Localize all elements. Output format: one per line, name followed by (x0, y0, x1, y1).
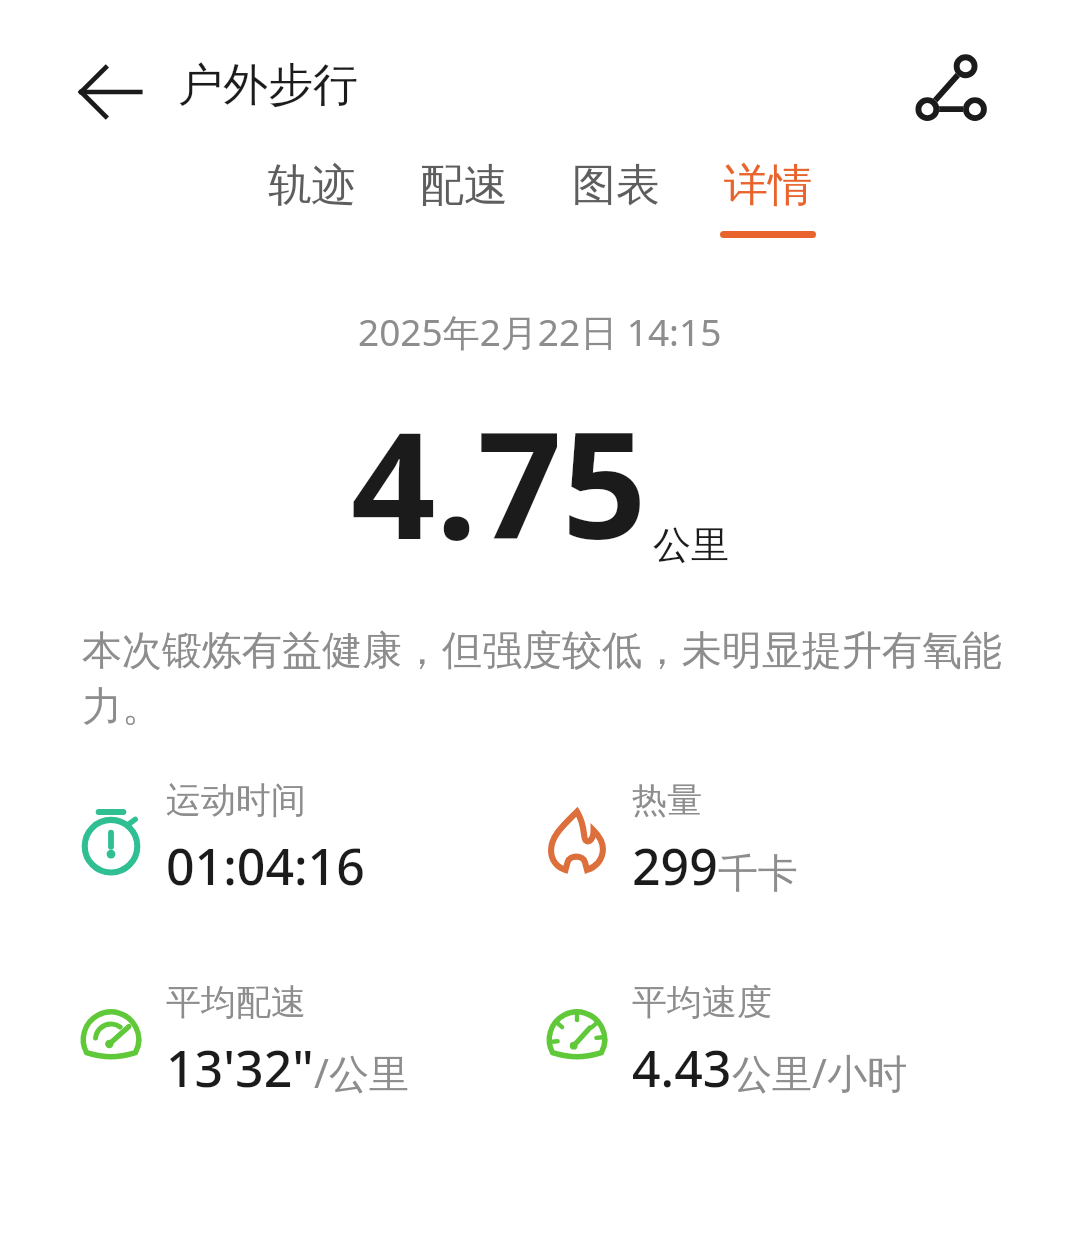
button[interactable]: 运动时间 (0, 778, 520, 900)
staticText: 01:04:16 (166, 832, 365, 900)
staticText: 图表 (572, 158, 660, 213)
staticText: 公里 (653, 521, 729, 569)
staticText: 运动时间 (166, 778, 306, 822)
staticText: /公里 (314, 1045, 409, 1100)
button[interactable]: 图表 (546, 148, 686, 248)
staticText: 2025年2月22日 14:15 (358, 306, 722, 357)
staticText: 平均配速 (166, 980, 306, 1024)
staticText: 4.75 (351, 381, 647, 583)
button[interactable]: 配速 (394, 148, 534, 248)
staticText: 千卡 (718, 848, 798, 898)
button[interactable]: 热量 (520, 778, 1080, 900)
staticText: 299 (632, 832, 718, 900)
button[interactable]: 平均配速 (0, 980, 520, 1102)
button[interactable]: Share (896, 38, 1004, 146)
button[interactable]: 轨迹 (242, 148, 382, 248)
staticText: 热量 (632, 778, 702, 822)
staticText: 详情 (724, 158, 812, 213)
staticText: 平均速度 (632, 980, 772, 1024)
button[interactable]: Back (62, 44, 158, 140)
staticText: 配速 (420, 158, 508, 213)
button[interactable]: 平均速度 (520, 980, 1080, 1102)
staticText: 户外步行 (178, 57, 358, 114)
button[interactable]: 详情 (698, 148, 838, 248)
staticText: 4.43 (632, 1034, 732, 1102)
staticText: 公里/小时 (732, 1045, 907, 1100)
staticText: 本次锻炼有益健康，但强度较低，未明显提升有氧能力。 (82, 625, 1018, 732)
staticText: 13'32" (166, 1034, 314, 1102)
staticText: 轨迹 (268, 158, 356, 213)
